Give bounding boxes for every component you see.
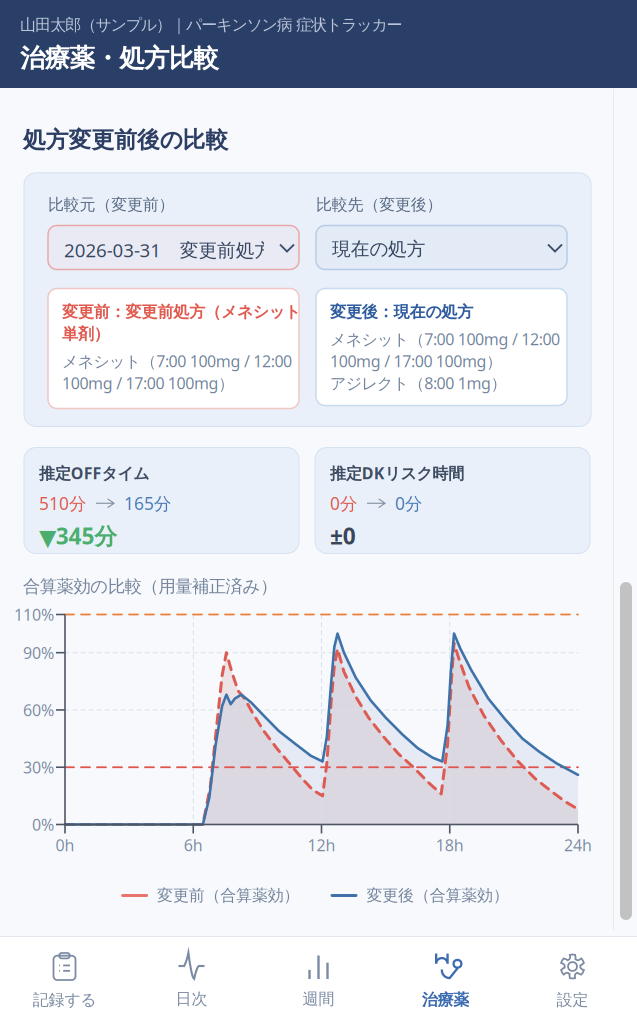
staticText: メネシット（7:00 100mg / 12:00 [330, 328, 560, 350]
staticText: 治療薬・処方比較 [20, 43, 219, 74]
staticText: 24h [564, 834, 592, 856]
staticText: 現在の処方 [332, 237, 426, 260]
staticText: 日次 [176, 989, 207, 1009]
staticText: 100mg / 17:00 100mg） [330, 350, 502, 372]
staticText: ±0 [330, 521, 356, 551]
staticText: 週間 [303, 989, 334, 1009]
button[interactable]: 記録する [1, 936, 128, 1024]
button[interactable]: 2026-03-31 変更前処方 [48, 225, 299, 269]
staticText: 0% [32, 814, 54, 835]
staticText: 変更後（合算薬効） [366, 886, 509, 905]
staticText: 推定DKリスク時間 [330, 462, 464, 484]
staticText: 設定 [557, 990, 588, 1010]
staticText: 12h [307, 834, 335, 856]
staticText: 510分 [39, 492, 86, 515]
staticText: 110% [14, 604, 54, 625]
staticText: 比較先（変更後） [316, 195, 443, 214]
staticText: 変更前（合算薬効） [157, 886, 299, 905]
staticText: 変更前：変更前処方（メネシット [62, 302, 301, 322]
staticText: 治療薬 [422, 990, 469, 1010]
staticText: 合算薬効の比較（用量補正済み） [23, 576, 277, 597]
button[interactable]: 現在の処方 [316, 225, 567, 269]
button[interactable]: 治療薬 [382, 936, 509, 1024]
staticText: 山田太郎（サンプル）｜パーキンソン病 症状トラッカー [20, 15, 402, 35]
staticText: 90% [23, 642, 54, 663]
staticText: 0分 [330, 492, 357, 515]
staticText: 0分 [395, 492, 422, 515]
button[interactable]: 日次 [128, 936, 255, 1024]
staticText: 処方変更前後の比較 [23, 126, 228, 154]
staticText: 単剤） [62, 324, 110, 344]
staticText: 推定OFFタイム [39, 462, 149, 484]
staticText: 165分 [124, 492, 171, 515]
staticText: 0h [55, 834, 74, 856]
staticText: 記録する [33, 990, 96, 1010]
staticText: 変更後：現在の処方 [330, 302, 473, 322]
staticText: 30% [23, 757, 54, 778]
staticText: アジレクト（8:00 1mg） [330, 372, 507, 394]
staticText: 18h [436, 834, 464, 856]
staticText: 比較元（変更前） [48, 195, 175, 214]
staticText: 100mg / 17:00 100mg） [62, 372, 234, 394]
staticText: 60% [23, 699, 54, 720]
staticText: 6h [184, 834, 203, 856]
staticText: メネシット（7:00 100mg / 12:00 [62, 350, 292, 372]
button[interactable]: 設定 [509, 936, 636, 1024]
staticText: ▼345分 [39, 521, 117, 551]
staticText: 2026-03-31 変更前処方 [64, 237, 273, 262]
button[interactable]: 週間 [255, 936, 382, 1024]
